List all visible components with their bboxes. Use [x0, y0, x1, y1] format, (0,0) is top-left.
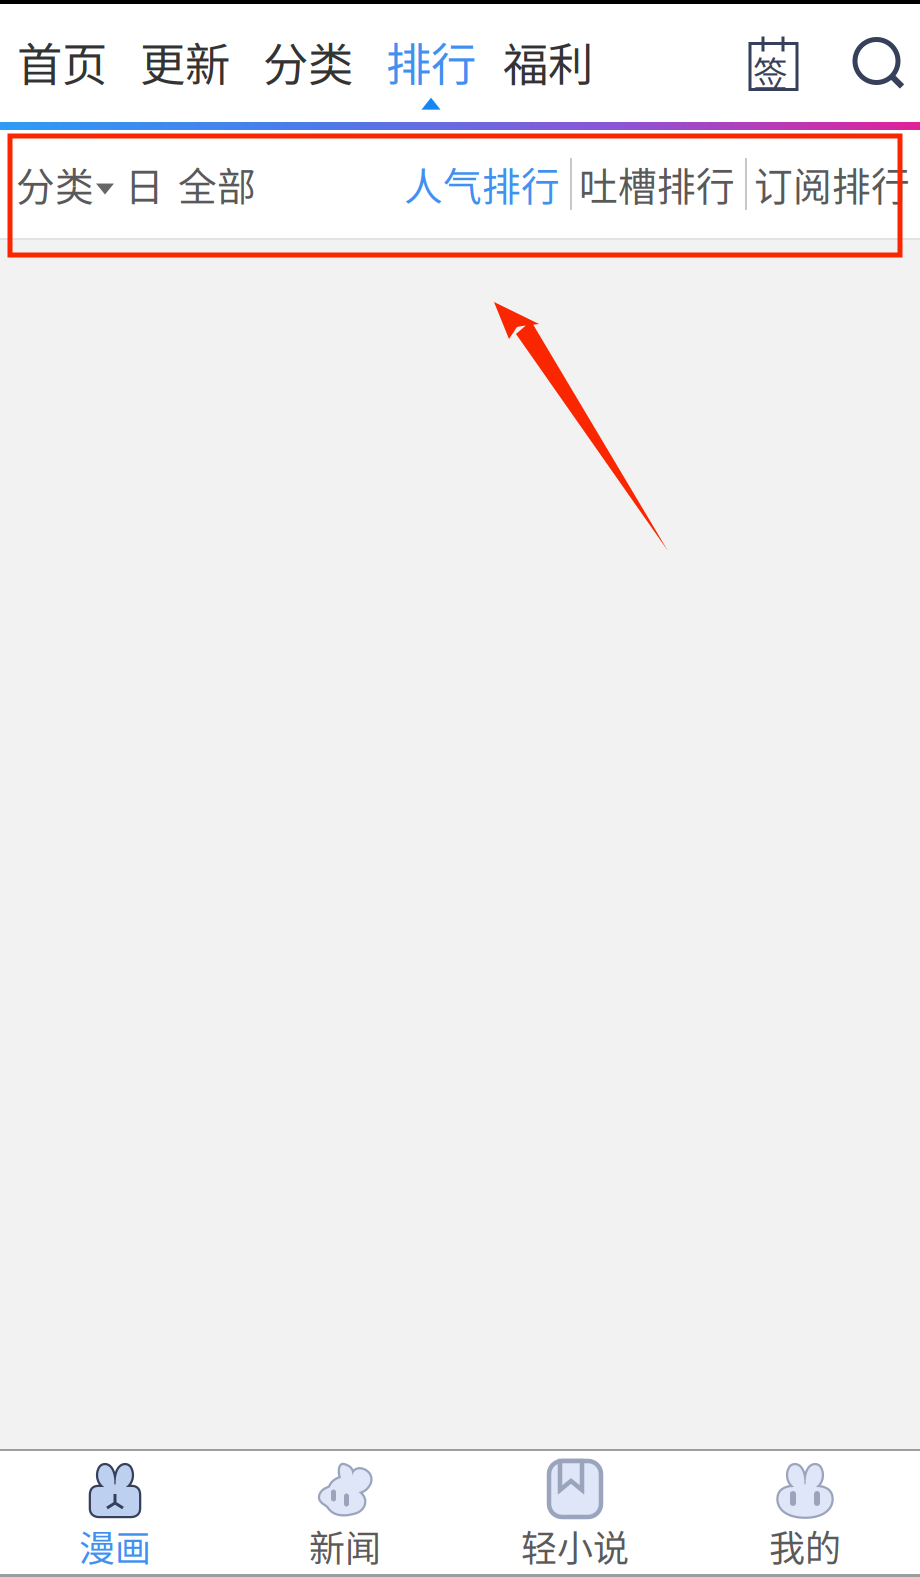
button[interactable]: 签到 — [736, 36, 811, 89]
staticText: 更新 — [140, 29, 230, 95]
button[interactable]: 轻小说 — [460, 1451, 690, 1574]
staticText: 吐槽排行 — [579, 156, 735, 212]
button[interactable]: 搜索 — [843, 35, 914, 90]
button[interactable]: 吐槽排行 — [579, 156, 735, 212]
button[interactable]: 排行 — [386, 4, 476, 122]
staticText: 签 — [753, 47, 788, 98]
staticText: 订阅排行 — [754, 156, 910, 212]
button[interactable]: 分类 — [263, 4, 353, 122]
button[interactable]: 人气排行 — [404, 156, 560, 212]
button[interactable]: 全部 — [178, 156, 256, 212]
staticText: 漫画 — [79, 1520, 151, 1572]
staticText: 轻小说 — [521, 1520, 629, 1572]
button[interactable]: 我的 — [690, 1451, 920, 1574]
staticText: 福利 — [503, 29, 593, 95]
button[interactable]: 日 — [125, 156, 164, 212]
staticText: 日 — [125, 156, 164, 212]
staticText: 我的 — [769, 1520, 841, 1572]
button[interactable]: 更新 — [140, 4, 230, 122]
staticText: 新闻 — [309, 1520, 381, 1572]
staticText: 分类 — [16, 156, 94, 212]
staticText: 人气排行 — [404, 156, 560, 212]
button[interactable]: 分类 — [16, 156, 114, 212]
staticText: 排行 — [386, 29, 476, 95]
button[interactable]: 漫画 — [0, 1451, 230, 1574]
button[interactable]: 新闻 — [230, 1451, 460, 1574]
button[interactable]: 订阅排行 — [754, 156, 910, 212]
staticText: 首页 — [17, 29, 107, 95]
staticText: 全部 — [178, 156, 256, 212]
staticText: 分类 — [263, 29, 353, 95]
button[interactable]: 首页 — [17, 4, 107, 122]
button[interactable]: 福利 — [503, 4, 593, 122]
